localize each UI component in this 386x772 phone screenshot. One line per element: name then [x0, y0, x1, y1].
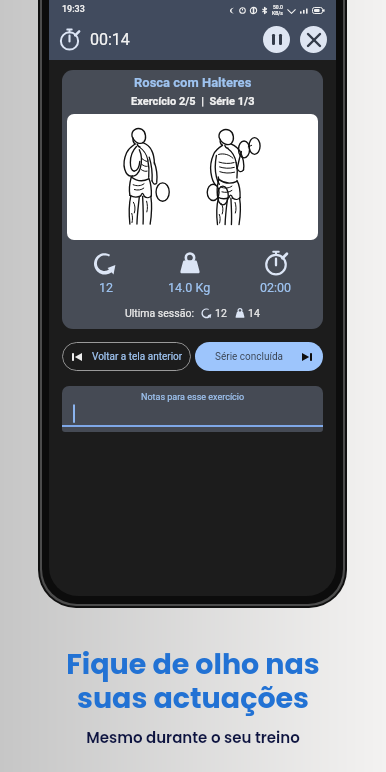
- button[interactable]: Close: [300, 26, 327, 53]
- staticText: Mesmo durante o seu treino: [86, 727, 300, 748]
- staticText: Notas para esse exercício: [141, 392, 245, 403]
- staticText: 12: [99, 280, 114, 295]
- staticText: 19:33: [62, 4, 85, 15]
- button[interactable]: Pause: [263, 26, 290, 53]
- staticText: Exercício 2/5 | Série 1/3: [131, 95, 255, 108]
- staticText: Rosca com Halteres: [134, 75, 252, 90]
- button[interactable]: Notas para esse exercício: [62, 386, 323, 432]
- staticText: 02:00: [260, 280, 292, 295]
- staticText: 12: [215, 307, 227, 319]
- staticText: 14: [248, 307, 260, 319]
- staticText: 00:14: [90, 30, 130, 49]
- staticText: Fique de olho nas suas actuações: [66, 644, 320, 718]
- button[interactable]: Voltar a tela anterior: [62, 342, 191, 371]
- staticText: 14.0 Kg: [168, 280, 211, 295]
- staticText: 50.0: [273, 4, 283, 10]
- staticText: KB/s: [272, 10, 283, 16]
- button[interactable]: Série concluída: [195, 342, 323, 371]
- staticText: Série concluída: [215, 351, 284, 363]
- staticText: Ultima sessão:: [125, 307, 194, 319]
- staticText: Voltar a tela anterior: [92, 351, 183, 363]
